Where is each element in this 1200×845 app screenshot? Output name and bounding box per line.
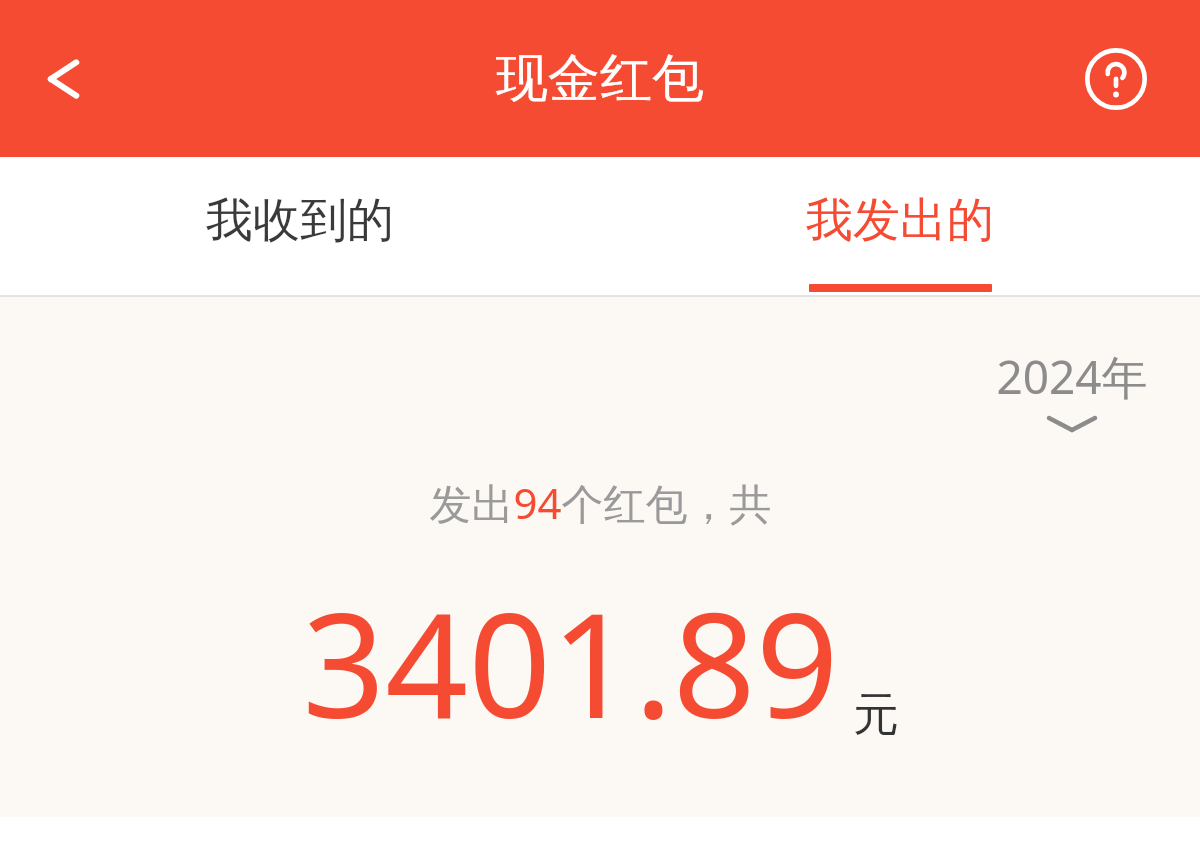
staticText: 现金红包 (496, 46, 704, 112)
staticText: 元 (853, 686, 899, 744)
staticText: 3401.89 (302, 563, 839, 760)
staticText: 发出94个红包，共 (429, 474, 772, 531)
staticText: 我发出的 (806, 191, 994, 250)
button[interactable]: Help (1077, 40, 1155, 118)
staticText: 2024年 (996, 345, 1148, 408)
staticText: 我收到的 (206, 191, 394, 250)
button[interactable]: 我发出的 (600, 157, 1200, 297)
button[interactable]: 我收到的 (0, 157, 600, 297)
button[interactable]: Back (24, 39, 104, 119)
button[interactable]: 2024年 (996, 345, 1148, 432)
